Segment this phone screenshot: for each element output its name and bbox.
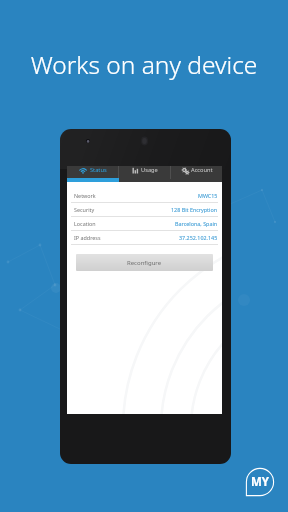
button[interactable]: Reconfigure (76, 254, 213, 271)
staticText: Network (74, 192, 96, 199)
staticText: Account (191, 166, 213, 174)
button[interactable]: Network (74, 189, 218, 202)
staticText: 128 Bit Encryption (171, 206, 218, 213)
staticText: Usage (141, 166, 158, 174)
staticText: Status (90, 166, 107, 174)
staticText: Works on any device (0, 48, 288, 81)
button[interactable]: Security (74, 203, 218, 216)
staticText: IP address (74, 234, 101, 241)
button[interactable]: Account (171, 166, 222, 174)
staticText: Location (74, 220, 96, 227)
staticText: Barcelona, Spain (175, 220, 218, 227)
button[interactable]: Location (74, 217, 218, 230)
staticText: Reconfigure (127, 259, 162, 267)
staticText: MWC15 (198, 192, 218, 199)
button[interactable]: Usage (119, 166, 170, 174)
staticText: Security (74, 206, 95, 213)
button[interactable]: IP address (74, 231, 218, 244)
button[interactable]: MY logo (244, 466, 276, 498)
button[interactable]: Status (67, 166, 118, 174)
staticText: MY (251, 474, 270, 490)
staticText: 37.252.102.145 (179, 234, 218, 241)
